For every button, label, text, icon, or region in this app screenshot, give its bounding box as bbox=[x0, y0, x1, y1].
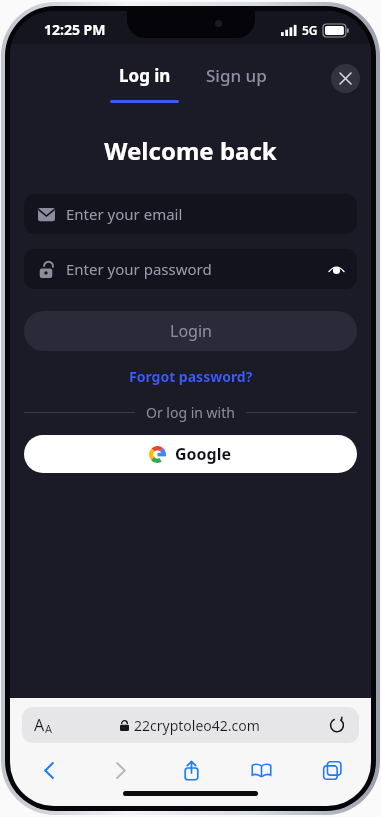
button[interactable]: Login bbox=[24, 311, 357, 351]
staticText: Login bbox=[170, 320, 212, 342]
staticText: Forgot password? bbox=[129, 367, 253, 386]
staticText: A bbox=[34, 714, 45, 736]
button[interactable]: Close bbox=[331, 64, 360, 93]
button[interactable]: Google bbox=[24, 435, 357, 473]
staticText: Log in bbox=[119, 64, 171, 87]
button[interactable]: Share bbox=[174, 753, 208, 787]
staticText: Or log in with bbox=[146, 403, 235, 422]
button[interactable]: Forgot password? bbox=[129, 367, 253, 386]
button[interactable]: Enter your email bbox=[24, 194, 357, 234]
staticText: Enter your email bbox=[66, 204, 183, 224]
button[interactable]: Tabs bbox=[315, 753, 349, 787]
staticText: A bbox=[45, 721, 53, 736]
button[interactable]: Sign up bbox=[202, 64, 271, 103]
button[interactable]: Text size bbox=[34, 714, 53, 736]
button[interactable]: Back bbox=[32, 753, 66, 787]
button[interactable]: Show password bbox=[321, 254, 351, 284]
button[interactable]: Enter your password bbox=[24, 249, 357, 289]
button[interactable]: Bookmarks bbox=[244, 753, 278, 787]
staticText: Enter your password bbox=[66, 259, 212, 279]
button[interactable]: Reload bbox=[327, 715, 347, 735]
staticText: 5G bbox=[302, 22, 318, 38]
staticText: 12:25 PM bbox=[44, 20, 106, 39]
staticText: Welcome back bbox=[104, 134, 277, 167]
button[interactable]: Text size bbox=[22, 707, 359, 743]
button[interactable]: Log in bbox=[110, 64, 179, 103]
staticText: Sign up bbox=[206, 64, 267, 87]
staticText: Google bbox=[175, 443, 232, 465]
staticText: 22cryptoleo42.com bbox=[134, 716, 260, 735]
button[interactable]: Forward bbox=[103, 753, 137, 787]
